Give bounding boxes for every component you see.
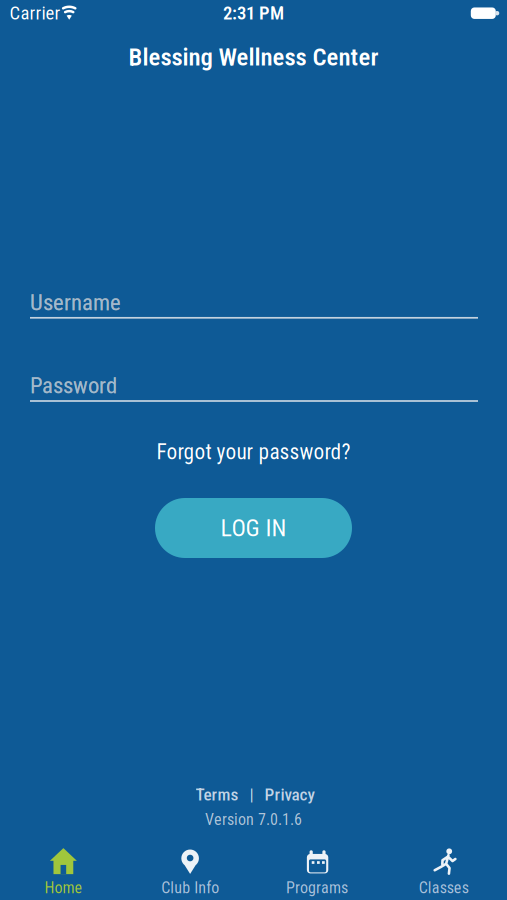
button[interactable]: Terms bbox=[195, 784, 238, 805]
textField[interactable]: Username bbox=[30, 289, 478, 316]
button[interactable]: Club Info bbox=[127, 838, 254, 900]
staticText: Classes bbox=[419, 878, 469, 897]
staticText: Home bbox=[44, 878, 82, 897]
staticText: LOG IN bbox=[220, 514, 286, 542]
staticText: Carrier bbox=[9, 2, 60, 24]
staticText: | bbox=[249, 784, 253, 805]
staticText: Username bbox=[30, 289, 121, 316]
staticText: Blessing Wellness Center bbox=[128, 42, 378, 71]
secureTextField[interactable]: Password bbox=[30, 372, 478, 399]
button[interactable]: LOG IN bbox=[155, 498, 352, 558]
button[interactable]: Privacy bbox=[264, 784, 314, 805]
button[interactable]: Home bbox=[0, 838, 127, 900]
staticText: Username bbox=[30, 289, 121, 316]
button[interactable]: Forgot your password? bbox=[156, 439, 350, 464]
staticText: Terms bbox=[195, 784, 238, 805]
staticText: Forgot your password? bbox=[156, 439, 350, 464]
staticText: 2:31 PM bbox=[223, 2, 284, 24]
button[interactable]: Programs bbox=[253, 838, 380, 900]
button[interactable]: Classes bbox=[380, 838, 507, 900]
staticText: Password bbox=[30, 372, 117, 399]
staticText: Club Info bbox=[161, 878, 219, 897]
staticText: Programs bbox=[286, 878, 348, 897]
staticText: Privacy bbox=[264, 784, 314, 805]
staticText: Password bbox=[30, 372, 117, 399]
staticText: Version 7.0.1.6 bbox=[205, 810, 302, 829]
